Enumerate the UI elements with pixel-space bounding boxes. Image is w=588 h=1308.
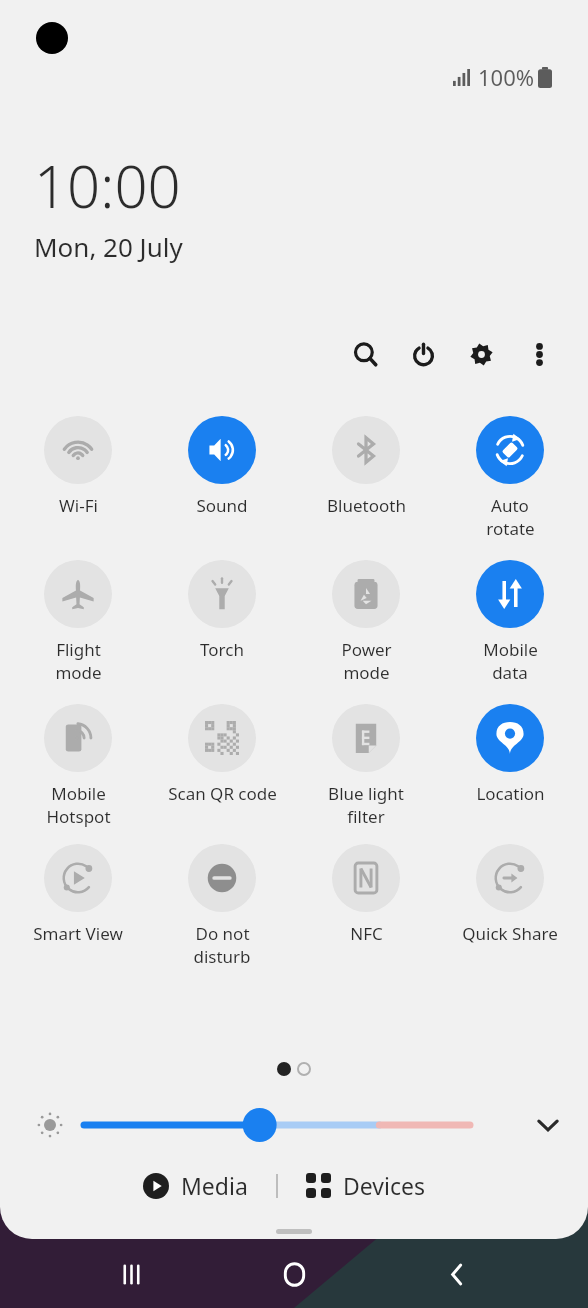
button[interactable]: Auto bbox=[444, 414, 576, 540]
staticText: 10:00 bbox=[34, 146, 181, 225]
button[interactable]: Flight bbox=[12, 558, 144, 684]
staticText: Hotspot bbox=[46, 805, 111, 828]
staticText: mode bbox=[55, 661, 102, 684]
staticText: Wi-Fi bbox=[59, 494, 98, 517]
staticText: Location bbox=[476, 782, 545, 805]
button[interactable]: Location bbox=[444, 702, 576, 805]
staticText: Mobile bbox=[483, 638, 538, 661]
button[interactable]: Wi-Fi bbox=[12, 414, 144, 517]
staticText: Sound bbox=[196, 494, 248, 517]
button[interactable]: Do not bbox=[156, 842, 288, 968]
staticText: 100% bbox=[478, 62, 535, 92]
button[interactable]: Media bbox=[133, 1164, 258, 1207]
button[interactable]: Brightness bbox=[30, 1105, 70, 1145]
button[interactable]: Scan QR code bbox=[156, 702, 288, 805]
button[interactable]: Power bbox=[300, 558, 432, 684]
button[interactable]: Quick Share bbox=[444, 842, 576, 945]
button[interactable]: Power bbox=[394, 325, 452, 383]
button[interactable]: NFC bbox=[300, 842, 432, 945]
button[interactable]: Devices bbox=[296, 1164, 435, 1207]
button[interactable]: Expand bbox=[522, 1102, 574, 1148]
staticText: Do not bbox=[195, 922, 250, 945]
staticText: Mon, 20 July bbox=[34, 229, 183, 264]
button[interactable]: Mobile bbox=[12, 702, 144, 828]
button[interactable]: Home bbox=[262, 1242, 326, 1306]
staticText: rotate bbox=[486, 517, 535, 540]
staticText: Devices bbox=[343, 1170, 425, 1201]
button[interactable]: Search bbox=[336, 325, 394, 383]
staticText: Blue light bbox=[328, 782, 404, 805]
staticText: Media bbox=[181, 1170, 248, 1201]
staticText: Power bbox=[341, 638, 392, 661]
button[interactable]: Brightness slider bbox=[84, 1102, 522, 1148]
staticText: mode bbox=[343, 661, 390, 684]
staticText: Mobile bbox=[51, 782, 106, 805]
button[interactable]: Blue light bbox=[300, 702, 432, 828]
button[interactable]: Back bbox=[425, 1242, 489, 1306]
staticText: Auto bbox=[491, 494, 529, 517]
staticText: Scan QR code bbox=[168, 782, 277, 805]
button[interactable]: Torch bbox=[156, 558, 288, 661]
staticText: Bluetooth bbox=[327, 494, 406, 517]
button[interactable]: Settings bbox=[452, 325, 510, 383]
button[interactable]: Bluetooth bbox=[300, 414, 432, 517]
staticText: disturb bbox=[193, 945, 251, 968]
staticText: Flight bbox=[56, 638, 101, 661]
staticText: Quick Share bbox=[462, 922, 558, 945]
button[interactable]: Mobile bbox=[444, 558, 576, 684]
staticText: NFC bbox=[350, 922, 383, 945]
staticText: data bbox=[492, 661, 528, 684]
staticText: Smart View bbox=[33, 922, 123, 945]
staticText: Torch bbox=[200, 638, 244, 661]
button[interactable]: Smart View bbox=[12, 842, 144, 945]
button[interactable]: Sound bbox=[156, 414, 288, 517]
button[interactable]: Recents bbox=[99, 1242, 163, 1306]
button[interactable]: More options bbox=[510, 325, 568, 383]
staticText: filter bbox=[347, 805, 385, 828]
